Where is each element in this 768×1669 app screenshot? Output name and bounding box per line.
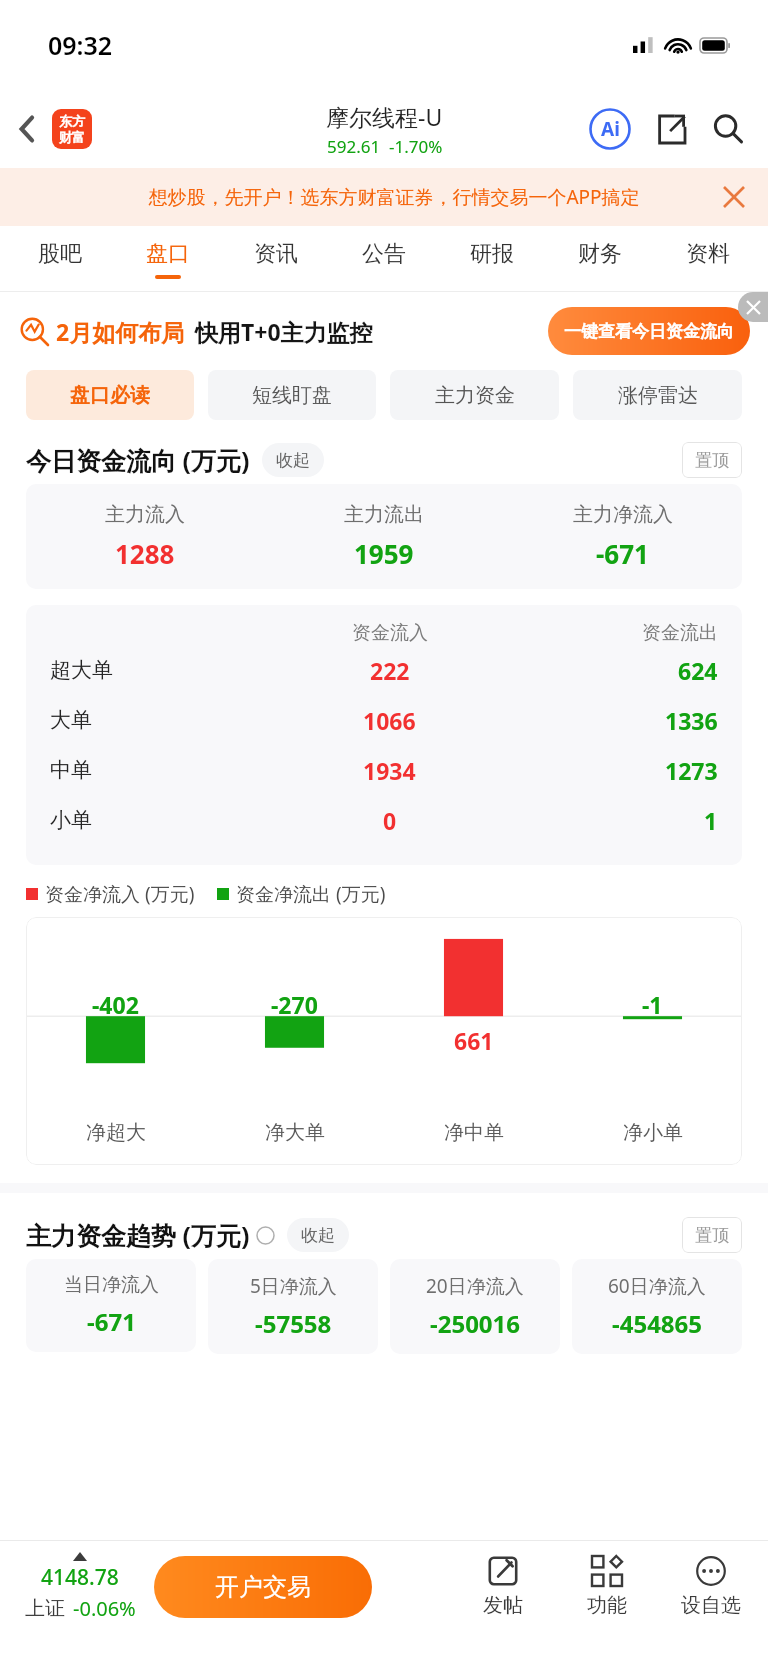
button[interactable]: 设自选 xyxy=(668,1556,754,1618)
staticText: 研报 xyxy=(470,240,514,268)
staticText: 资金净流入 (万元) xyxy=(45,881,195,907)
staticText: 1288 xyxy=(115,536,175,571)
button[interactable]: 主力流入 xyxy=(26,484,742,589)
button[interactable]: 涨停雷达 xyxy=(573,370,742,420)
staticText: 592.61 -1.70% xyxy=(327,135,443,158)
button[interactable]: 资料 xyxy=(654,226,762,292)
button[interactable]: 功能 xyxy=(564,1556,650,1618)
button[interactable]: 置顶 xyxy=(682,1217,742,1253)
staticText: 收起 xyxy=(301,1225,335,1246)
button[interactable]: 盘口必读 xyxy=(26,370,194,420)
button[interactable]: 置顶 xyxy=(682,442,742,478)
staticText: 1273 xyxy=(665,755,718,786)
staticText: 大单 xyxy=(50,707,92,733)
button[interactable]: 60日净流入 xyxy=(572,1259,742,1354)
staticText: 一键查看今日资金流向 xyxy=(564,321,734,342)
staticText: 短线盯盘 xyxy=(252,383,332,408)
button[interactable]: 4148.78 xyxy=(14,1552,146,1622)
staticText: -270 xyxy=(271,989,318,1020)
button[interactable]: 20日净流入 xyxy=(390,1259,560,1354)
button[interactable]: 发帖 xyxy=(460,1556,546,1618)
staticText: 盘口 xyxy=(146,240,190,268)
staticText: 东方 xyxy=(59,113,85,129)
staticText: 超大单 xyxy=(50,657,113,683)
staticText: 60日净流入 xyxy=(608,1273,706,1299)
staticText: 小单 xyxy=(50,807,92,833)
staticText: 资金流出 xyxy=(642,621,718,645)
staticText: 今日资金流向 (万元) xyxy=(26,443,250,477)
staticText: 0 xyxy=(383,805,397,836)
staticText: 中单 xyxy=(50,757,92,783)
button[interactable]: 公告 xyxy=(330,226,438,292)
staticText: -250016 xyxy=(430,1307,521,1340)
button[interactable]: 关闭广告 xyxy=(738,292,768,322)
button[interactable]: 盘口 xyxy=(114,226,222,292)
staticText: -1 xyxy=(642,989,663,1020)
staticText: 财富 xyxy=(59,129,85,145)
staticText: 想炒股，先开户！选东方财富证券，行情交易一个APP搞定 xyxy=(148,184,640,210)
button[interactable]: Search xyxy=(706,107,750,151)
staticText: 发帖 xyxy=(483,1593,523,1618)
staticText: 净超大 xyxy=(86,1120,146,1145)
staticText: 661 xyxy=(454,1025,494,1056)
button[interactable]: 当日净流入 xyxy=(26,1259,196,1352)
staticText: -671 xyxy=(87,1305,136,1338)
button[interactable]: 资金流入 xyxy=(26,605,742,865)
staticText: 股吧 xyxy=(38,240,82,268)
staticText: 开户交易 xyxy=(215,1572,311,1602)
button[interactable]: 资讯 xyxy=(222,226,330,292)
staticText: 1959 xyxy=(354,536,414,571)
staticText: 收起 xyxy=(276,450,310,471)
button[interactable]: 收起 xyxy=(287,1218,349,1252)
staticText: 当日净流入 xyxy=(64,1273,159,1297)
button[interactable]: 一键查看今日资金流向 xyxy=(548,307,750,355)
staticText: 设自选 xyxy=(681,1593,741,1618)
staticText: 主力资金趋势 (万元) xyxy=(26,1218,250,1252)
staticText: -402 xyxy=(92,989,139,1020)
staticText: 净大单 xyxy=(265,1120,325,1145)
button[interactable]: 5日净流入 xyxy=(208,1259,378,1354)
button[interactable]: 收起 xyxy=(262,443,324,477)
button[interactable]: 关闭 xyxy=(714,177,754,217)
staticText: 涨停雷达 xyxy=(618,383,698,408)
staticText: 摩尔线程-U xyxy=(326,101,443,132)
button[interactable]: 东方财富 xyxy=(52,109,92,149)
button[interactable]: 短线盯盘 xyxy=(208,370,376,420)
button[interactable]: Back xyxy=(10,108,44,150)
staticText: Ai xyxy=(601,116,620,142)
staticText: 1336 xyxy=(665,705,718,736)
staticText: 财务 xyxy=(578,240,622,268)
button[interactable]: AI 助手 xyxy=(588,107,632,151)
staticText: 资讯 xyxy=(254,240,298,268)
staticText: -454865 xyxy=(612,1307,703,1340)
staticText: -0.06% xyxy=(73,1595,136,1622)
staticText: 净小单 xyxy=(623,1120,683,1145)
staticText: 功能 xyxy=(587,1593,627,1618)
staticText: 资料 xyxy=(686,240,730,268)
button[interactable]: -402 xyxy=(26,917,742,1165)
button[interactable]: Share xyxy=(650,108,692,150)
button[interactable]: 研报 xyxy=(438,226,546,292)
staticText: -671 xyxy=(596,536,649,571)
staticText: 624 xyxy=(678,655,718,686)
staticText: 置顶 xyxy=(695,450,729,471)
button[interactable]: 2月如何布局 xyxy=(20,307,750,355)
staticText: 主力资金 xyxy=(435,383,515,408)
staticText: 1066 xyxy=(363,705,416,736)
staticText: -57558 xyxy=(255,1307,332,1340)
staticText: 2月如何布局 xyxy=(56,316,185,347)
staticText: 5日净流入 xyxy=(250,1273,337,1299)
staticText: 09:32 xyxy=(48,28,113,62)
staticText: 公告 xyxy=(362,240,406,268)
button[interactable]: 财务 xyxy=(546,226,654,292)
staticText: 4148.78 xyxy=(41,1563,119,1592)
staticText: 上证 xyxy=(25,1596,65,1621)
button[interactable]: 想炒股，先开户！选东方财富证券，行情交易一个APP搞定 xyxy=(0,168,768,226)
button[interactable]: 主力资金 xyxy=(390,370,559,420)
button[interactable]: 开户交易 xyxy=(154,1556,372,1618)
button[interactable]: 股吧 xyxy=(6,226,114,292)
staticText: 20日净流入 xyxy=(426,1273,524,1299)
staticText: 主力流入 xyxy=(105,502,185,527)
staticText: 1 xyxy=(704,805,718,836)
staticText: 快用T+0主力监控 xyxy=(195,316,373,347)
